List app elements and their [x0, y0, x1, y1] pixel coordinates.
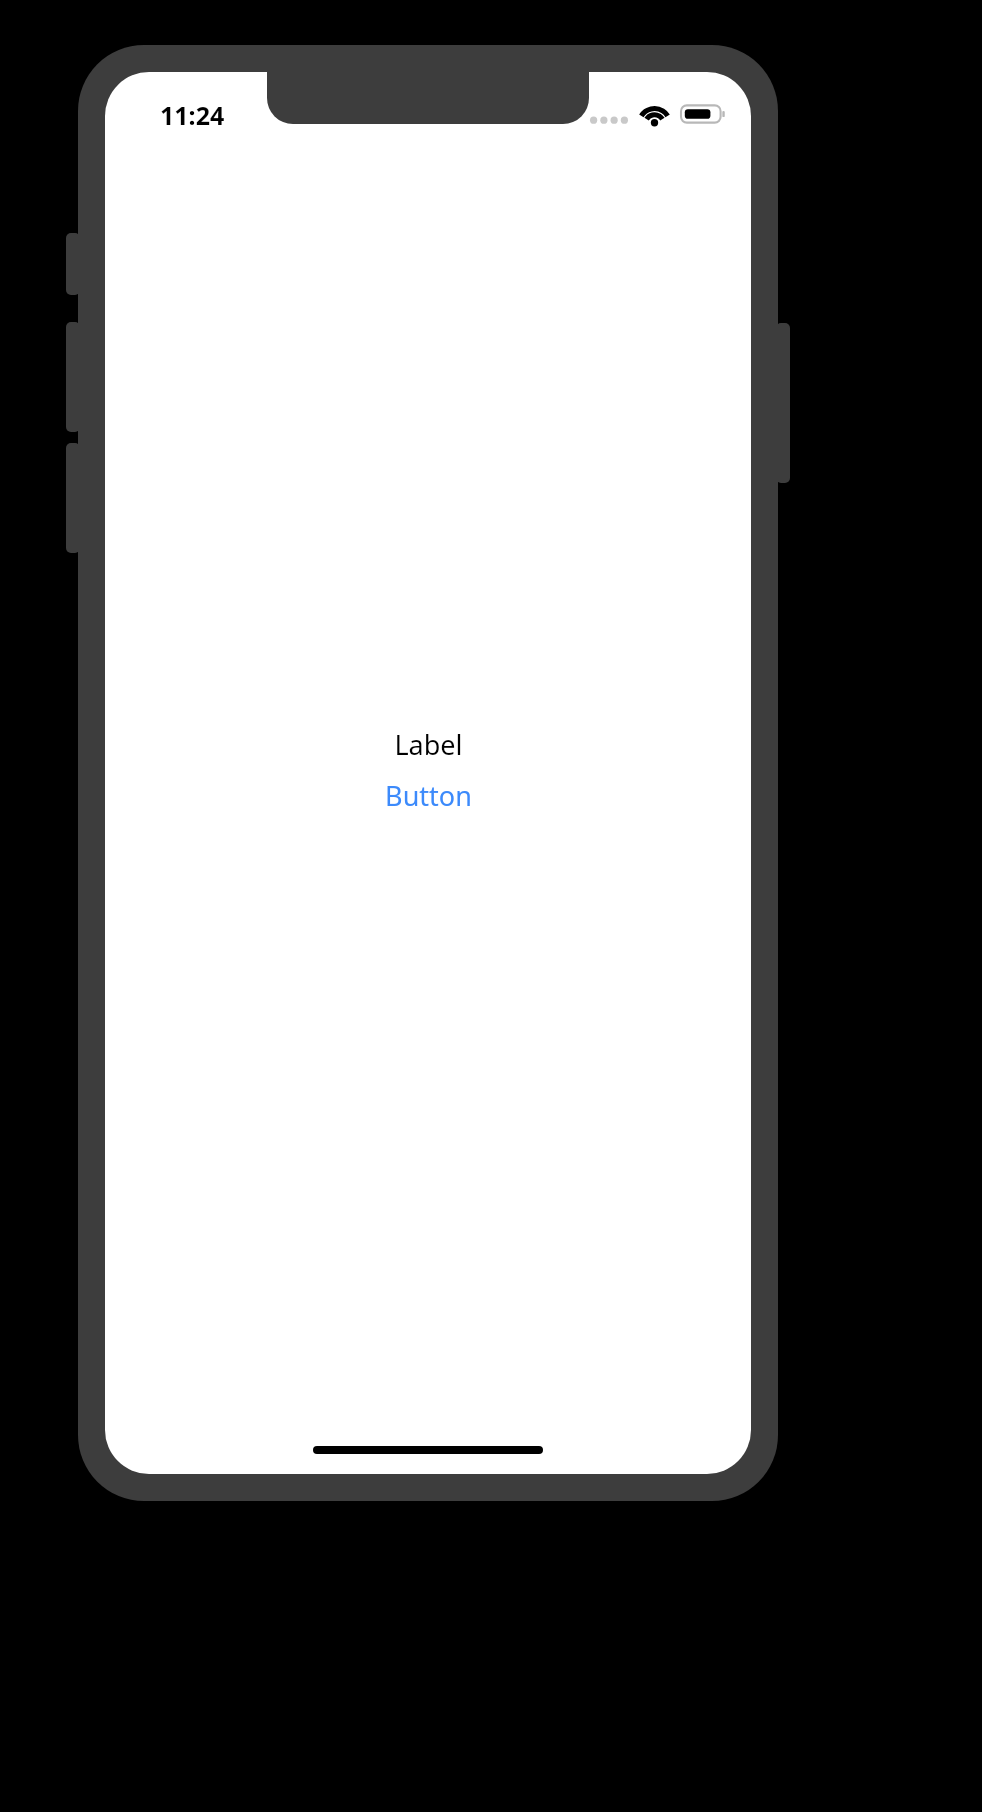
button[interactable]: Button	[379, 775, 478, 816]
staticText: Button	[385, 777, 472, 814]
other: Home indicator	[313, 1446, 543, 1454]
staticText: 11:24	[160, 98, 225, 132]
staticText: Label	[394, 726, 463, 763]
